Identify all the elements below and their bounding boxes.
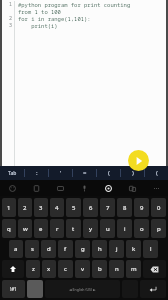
staticText: 3 — [39, 204, 43, 212]
button[interactable]: 5 — [66, 198, 81, 217]
button[interactable]: 1 — [0, 0, 168, 166]
button[interactable]: Enter — [140, 280, 166, 298]
button[interactable]: = — [73, 166, 96, 180]
button[interactable]: ) — [121, 166, 144, 180]
button[interactable]: ( — [97, 166, 120, 180]
staticText: from 1 to 100 — [18, 8, 61, 15]
button[interactable]: q — [2, 219, 16, 238]
button[interactable]: z — [26, 260, 40, 278]
button[interactable]: ' — [49, 166, 72, 180]
staticText: z — [32, 265, 35, 273]
button[interactable]: n — [109, 260, 124, 278]
button[interactable]: Backspace — [143, 260, 166, 278]
staticText: ( — [156, 169, 158, 177]
button[interactable]: x — [42, 260, 56, 278]
button[interactable]: ( — [145, 166, 168, 180]
button[interactable]: t — [66, 219, 81, 238]
staticText: ' — [60, 169, 62, 177]
staticText: = — [83, 169, 87, 177]
staticText: 1 — [7, 204, 11, 212]
button[interactable]: Split keyboard — [120, 180, 144, 196]
button[interactable]: : — [25, 166, 48, 180]
button[interactable]: 1 — [2, 198, 16, 217]
staticText: 7 — [106, 204, 110, 212]
staticText: 1 — [8, 1, 12, 8]
staticText: h — [98, 245, 102, 253]
staticText: u — [106, 225, 110, 233]
button[interactable]: More options — [144, 180, 168, 196]
staticText: for i in range(1,101): — [18, 15, 91, 22]
staticText: p — [157, 225, 161, 233]
button[interactable]: Tab — [0, 166, 24, 180]
button[interactable]: r — [50, 219, 64, 238]
staticText: k — [132, 245, 136, 253]
staticText: m — [131, 265, 137, 273]
button[interactable]: i — [117, 219, 132, 238]
staticText: b — [98, 265, 102, 273]
button[interactable]: Voice input — [72, 180, 96, 196]
button[interactable]: p — [151, 219, 166, 238]
staticText: 2 — [8, 15, 12, 22]
button[interactable]: 0 — [151, 198, 166, 217]
staticText: e — [39, 225, 43, 233]
button[interactable]: a — [9, 240, 23, 258]
staticText: 4 — [55, 204, 59, 212]
staticText: ) — [132, 169, 134, 177]
button[interactable]: h — [92, 240, 107, 258]
button[interactable]: Emoji — [0, 180, 24, 196]
button[interactable]: j — [109, 240, 124, 258]
staticText: s — [31, 245, 34, 253]
button[interactable]: e — [34, 219, 48, 238]
staticText: y — [89, 225, 93, 233]
staticText: print(i) — [18, 22, 58, 29]
button[interactable]: y — [83, 219, 98, 238]
staticText: : — [36, 169, 38, 177]
button[interactable]: Keyboard settings — [96, 180, 120, 196]
button[interactable]: 3 — [34, 198, 48, 217]
staticText: d — [47, 245, 51, 253]
staticText: v — [81, 265, 85, 273]
button[interactable]: s — [25, 240, 39, 258]
button[interactable]: u — [100, 219, 115, 238]
button[interactable]: v — [75, 260, 90, 278]
button[interactable]: 4 — [50, 198, 64, 217]
staticText: g — [81, 245, 85, 253]
staticText: o — [140, 225, 144, 233]
button[interactable]: 9 — [134, 198, 149, 217]
button[interactable]: l — [143, 240, 158, 258]
button[interactable]: Run — [128, 150, 149, 171]
staticText: j — [116, 245, 118, 253]
button[interactable]: 7 — [100, 198, 115, 217]
staticText: 9 — [140, 204, 144, 212]
staticText: 5 — [72, 204, 76, 212]
button[interactable]: 2 — [18, 198, 32, 217]
staticText: 0 — [157, 204, 161, 212]
staticText: x — [47, 265, 51, 273]
button[interactable]: c — [58, 260, 73, 278]
button[interactable]: Clipboard — [24, 180, 48, 196]
staticText: f — [64, 245, 67, 253]
button[interactable]: 8 — [117, 198, 132, 217]
button[interactable]: Comma — [27, 280, 43, 298]
button[interactable]: ◄ English (US) ► — [45, 280, 120, 298]
staticText: q — [7, 225, 11, 233]
button[interactable]: Stickers — [48, 180, 72, 196]
button[interactable]: g — [75, 240, 90, 258]
staticText: 6 — [89, 204, 93, 212]
button[interactable]: !#1 — [2, 280, 25, 298]
button[interactable]: b — [92, 260, 107, 278]
staticText: ◄ English (US) ► — [69, 287, 96, 292]
staticText: w — [23, 225, 28, 233]
button[interactable]: w — [18, 219, 32, 238]
staticText: r — [56, 225, 59, 233]
button[interactable]: k — [126, 240, 141, 258]
staticText: t — [72, 225, 75, 233]
button[interactable]: 6 — [83, 198, 98, 217]
button[interactable]: m — [126, 260, 141, 278]
button[interactable]: Shift — [2, 260, 24, 278]
staticText: ( — [108, 169, 110, 177]
button[interactable]: d — [41, 240, 56, 258]
button[interactable]: o — [134, 219, 149, 238]
button[interactable]: f — [58, 240, 73, 258]
